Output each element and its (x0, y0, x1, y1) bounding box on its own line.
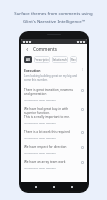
staticText: All (26, 58, 30, 62)
button[interactable]: Home (51, 184, 57, 190)
button[interactable]: There is a lot work this required (21, 127, 87, 142)
staticText: We have respect for direction (24, 145, 67, 149)
staticText: We have had great buy-in with superior f… (24, 107, 79, 115)
staticText: Anonymous Team Member (24, 98, 56, 101)
button[interactable]: Execution (21, 65, 87, 85)
button[interactable]: Prescriptive (34, 56, 50, 63)
button[interactable]: Back (33, 184, 39, 190)
button[interactable]: Select comment (81, 146, 84, 149)
staticText: Anonymous Team Member (24, 121, 56, 124)
staticText: Execution (24, 68, 41, 73)
staticText: Anonymous Team Member (24, 151, 56, 154)
button[interactable]: We have had great buy-in with superior f… (21, 104, 87, 127)
button[interactable]: Select comment (81, 89, 84, 92)
staticText: Anonymous Team Member (24, 166, 56, 169)
staticText: I am looking building great on my big an… (24, 74, 79, 82)
staticText: We have an array team work (24, 160, 66, 164)
button[interactable]: Back (24, 46, 31, 53)
staticText: Surface themes from comments using (14, 10, 93, 16)
button[interactable]: Recents (69, 184, 75, 190)
button[interactable]: Relationship (52, 56, 68, 63)
staticText: There is great transition, newness and g… (24, 88, 79, 96)
button[interactable]: There is great transition, newness and g… (21, 85, 87, 104)
staticText: Prescriptive (34, 58, 50, 62)
button[interactable]: Rec (70, 56, 77, 63)
button[interactable]: Select comment (81, 131, 84, 134)
staticText: This is a really important to me. (24, 115, 70, 119)
button[interactable]: Select comment (81, 108, 84, 111)
button[interactable]: More options (81, 68, 84, 71)
button[interactable]: We have an array team work (21, 157, 87, 172)
staticText: Glint's Narrative Intelligence™ (23, 18, 85, 24)
staticText: Rec (71, 58, 76, 62)
button[interactable]: We have respect for direction (21, 142, 87, 157)
staticText: Comments (33, 46, 57, 52)
staticText: There is a lot work this required (24, 130, 70, 134)
staticText: Anonymous Team Member (24, 136, 56, 139)
button[interactable]: All (24, 56, 32, 63)
button[interactable]: Select comment (81, 161, 84, 164)
staticText: Relationship (52, 58, 68, 62)
